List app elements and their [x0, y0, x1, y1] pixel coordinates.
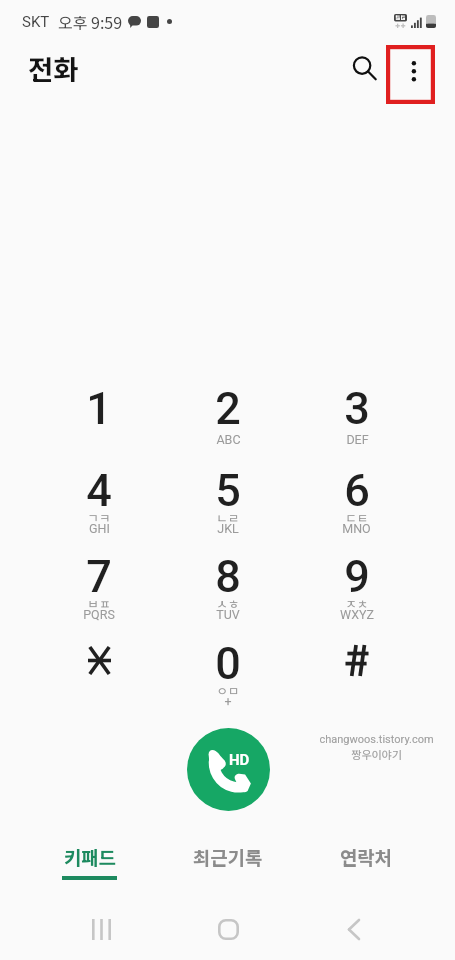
staticText: 1 [86, 382, 112, 435]
button[interactable] [292, 637, 421, 723]
button[interactable] [35, 637, 163, 723]
staticText: 키패드 [64, 843, 116, 870]
button[interactable]: Call [187, 728, 270, 811]
staticText: + [224, 694, 232, 709]
staticText: DEF [346, 432, 369, 447]
staticText: 0 [215, 637, 241, 690]
button[interactable]: 1 [35, 382, 163, 464]
button[interactable]: 연락처 [304, 838, 428, 888]
button[interactable]: Recent apps [75, 903, 127, 955]
staticText: 7 [86, 550, 112, 603]
button[interactable]: 0 [163, 637, 292, 723]
staticText: 오후 9:59 [58, 10, 123, 33]
staticText: ABC [216, 432, 241, 447]
staticText: WXYZ [340, 607, 374, 622]
staticText: ㄱㅋ [87, 508, 111, 526]
staticText: ㅅㅎ [216, 594, 240, 612]
button[interactable]: 키패드 [27, 838, 151, 888]
staticText: 최근기록 [193, 843, 263, 870]
staticText: changwoos.tistory.com [319, 733, 434, 746]
button[interactable]: 6 [292, 464, 421, 550]
button[interactable]: More options [386, 45, 435, 104]
button[interactable]: Back [328, 903, 380, 955]
button[interactable]: 5 [163, 464, 292, 550]
staticText: 연락처 [340, 843, 392, 870]
staticText: 전화 [28, 48, 79, 88]
staticText: ㅈㅊ [345, 594, 369, 612]
button[interactable]: 4 [35, 464, 163, 550]
staticText: 6 [344, 464, 370, 517]
staticText: 3 [344, 382, 370, 435]
staticText: TUV [216, 607, 240, 622]
staticText: MNO [342, 521, 371, 536]
button[interactable]: 9 [292, 550, 421, 637]
staticText: ㅇㅁ [216, 681, 240, 699]
staticText: 2 [215, 382, 241, 435]
button[interactable]: Home [202, 903, 254, 955]
button[interactable]: Search [341, 46, 384, 89]
button[interactable]: 3 [292, 382, 421, 464]
staticText: 8 [215, 550, 241, 603]
staticText: GHI [89, 521, 110, 536]
staticText: 짱우이야기 [351, 746, 402, 762]
staticText: 5 [215, 464, 241, 517]
staticText: JKL [217, 521, 239, 536]
button[interactable]: 2 [163, 382, 292, 464]
staticText: SKT [22, 13, 50, 31]
staticText: ㄷㅌ [345, 508, 369, 526]
staticText: ㅂㅍ [87, 594, 111, 612]
staticText: ㄴㄹ [216, 508, 240, 526]
staticText: PQRS [83, 607, 115, 622]
staticText: HD [229, 751, 250, 769]
staticText: 9 [344, 550, 370, 603]
staticText: 4 [86, 464, 112, 517]
button[interactable]: 8 [163, 550, 292, 637]
button[interactable]: 7 [35, 550, 163, 637]
button[interactable]: 최근기록 [166, 838, 290, 888]
